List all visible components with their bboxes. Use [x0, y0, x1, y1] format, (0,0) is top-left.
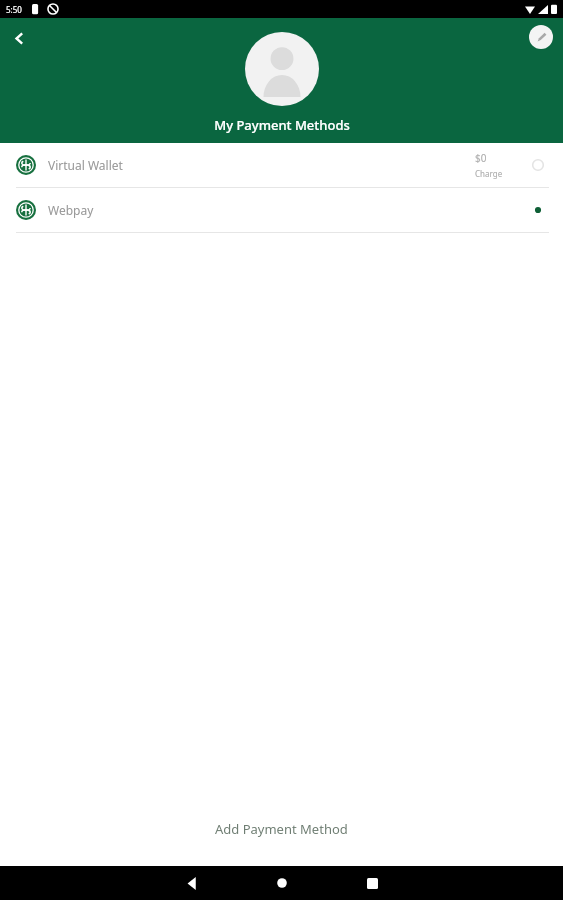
button[interactable]: Back — [4, 23, 34, 53]
button[interactable]: Virtual Wallet — [0, 143, 563, 187]
staticText: Webpay — [48, 202, 94, 218]
button[interactable]: Recents — [350, 866, 394, 900]
staticText: $0 — [475, 151, 487, 165]
button[interactable]: Home — [260, 866, 304, 900]
staticText: 5:50 — [6, 4, 22, 15]
staticText: Add Payment Method — [215, 820, 348, 838]
button[interactable]: Edit — [529, 25, 553, 49]
staticText: My Payment Methods — [214, 116, 350, 134]
button[interactable]: Webpay — [0, 188, 563, 232]
staticText: Charge — [475, 168, 503, 179]
button[interactable]: Back — [170, 866, 214, 900]
staticText: Virtual Wallet — [48, 157, 123, 173]
button[interactable]: Add Payment Method — [0, 806, 563, 852]
